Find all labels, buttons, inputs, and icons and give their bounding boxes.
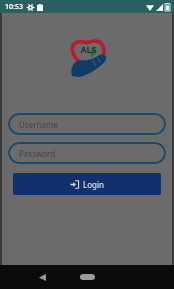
staticText: Login bbox=[83, 179, 104, 190]
button[interactable]: Username bbox=[8, 113, 166, 135]
button[interactable]: Login bbox=[13, 173, 161, 195]
button[interactable]: Password bbox=[8, 142, 166, 164]
button[interactable]: Back bbox=[34, 269, 50, 285]
staticText: ALS bbox=[80, 43, 97, 55]
button[interactable]: Home bbox=[75, 269, 99, 285]
staticText: Password bbox=[19, 148, 56, 159]
staticText: 10:53 bbox=[5, 2, 23, 12]
staticText: Username bbox=[19, 119, 58, 130]
